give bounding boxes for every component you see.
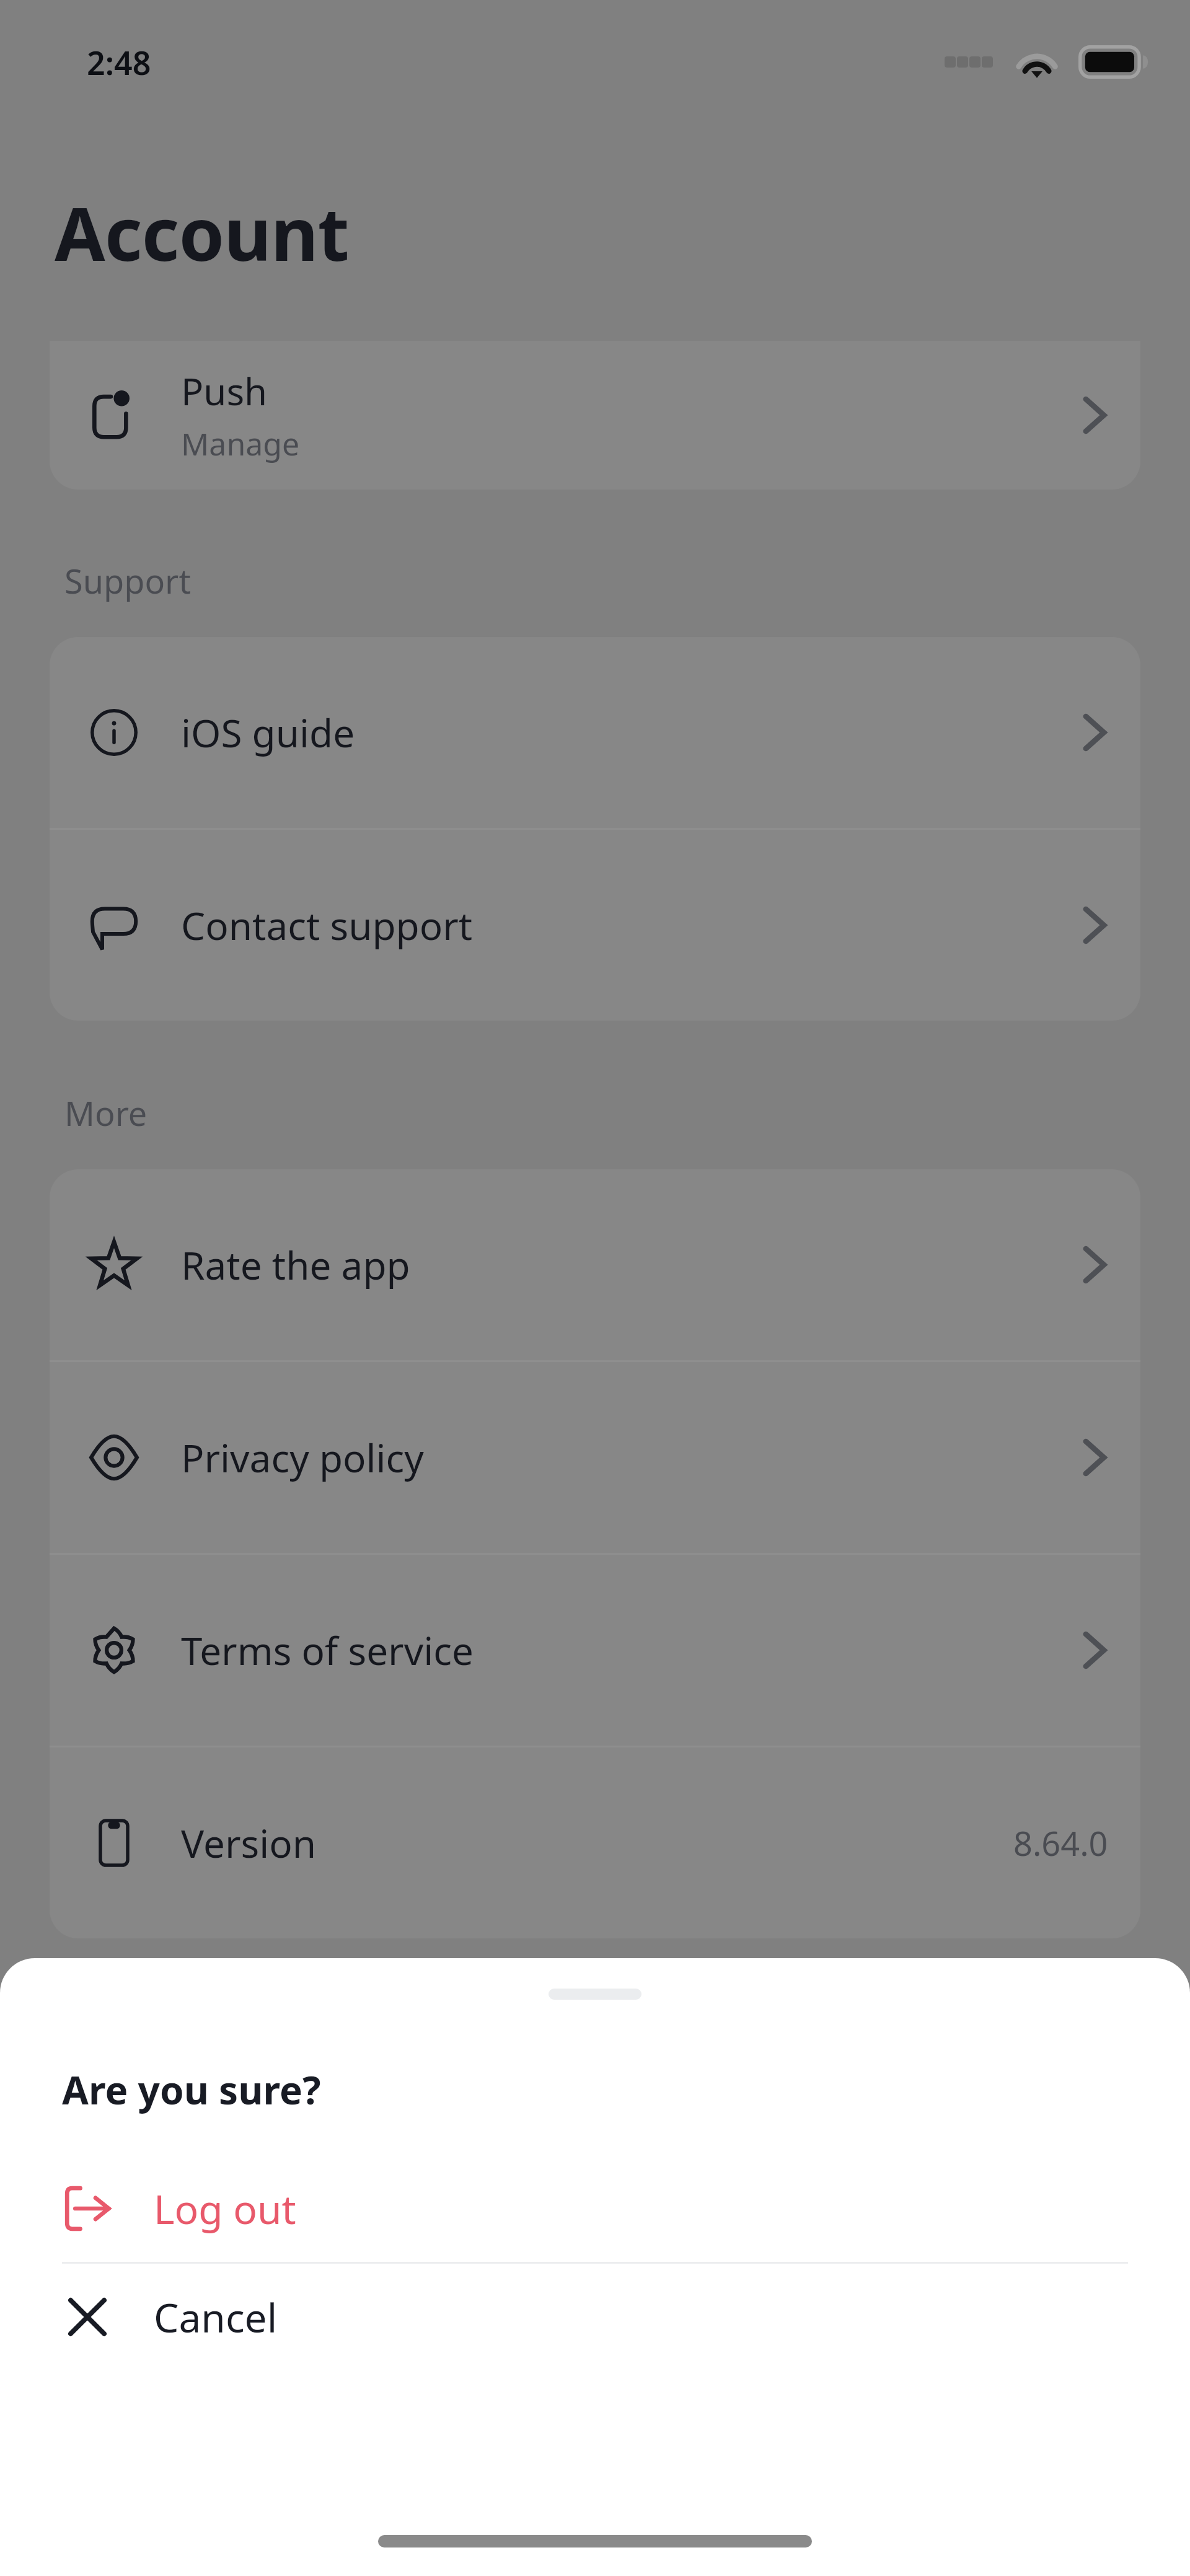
button[interactable]: Contact support bbox=[50, 830, 1140, 1021]
button[interactable]: Privacy policy bbox=[50, 1362, 1140, 1553]
staticText: Version bbox=[181, 1817, 1013, 1869]
button[interactable]: Version bbox=[50, 1747, 1140, 1938]
staticText: Manage bbox=[181, 423, 300, 465]
staticText: 2:48 bbox=[87, 40, 151, 84]
staticText: Contact support bbox=[181, 899, 1081, 951]
button[interactable]: Log out bbox=[0, 2155, 1190, 2262]
button[interactable]: Push bbox=[50, 341, 1140, 490]
staticText: Account bbox=[55, 183, 349, 283]
staticText: More bbox=[64, 1090, 148, 1136]
staticText: Push bbox=[181, 366, 268, 416]
button[interactable]: iOS guide bbox=[50, 637, 1140, 828]
staticText: Cancel bbox=[154, 2290, 278, 2344]
staticText: Terms of service bbox=[181, 1624, 1081, 1676]
staticText: 8.64.0 bbox=[1013, 1820, 1108, 1866]
staticText: Privacy policy bbox=[181, 1431, 1081, 1484]
staticText: iOS guide bbox=[181, 706, 1081, 758]
button[interactable]: Terms of service bbox=[50, 1555, 1140, 1746]
button[interactable]: Cancel bbox=[0, 2264, 1190, 2370]
staticText: Rate the app bbox=[181, 1239, 1081, 1291]
staticText: Log out bbox=[154, 2182, 296, 2236]
staticText: Support bbox=[64, 558, 191, 604]
staticText: Are you sure? bbox=[62, 2064, 321, 2116]
button[interactable]: Rate the app bbox=[50, 1169, 1140, 1360]
